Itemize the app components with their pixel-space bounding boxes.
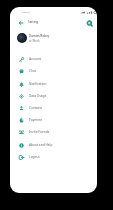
staticText: Data Usage bbox=[29, 94, 47, 98]
staticText: Notification bbox=[29, 82, 47, 86]
button[interactable]: Logout bbox=[10, 151, 97, 163]
button[interactable]: Contacts bbox=[10, 102, 97, 114]
button[interactable]: Account bbox=[10, 53, 97, 65]
button[interactable]: Search bbox=[83, 16, 96, 30]
staticText: Account bbox=[29, 57, 42, 61]
staticText: Contacts bbox=[29, 106, 43, 110]
staticText: Payment bbox=[29, 118, 43, 122]
staticText: Chat bbox=[29, 69, 36, 73]
staticText: About and Help bbox=[29, 143, 53, 147]
staticText: 3:05 PM bbox=[22, 11, 30, 14]
button[interactable]: Damon/Robey bbox=[10, 29, 97, 47]
staticText: at Work bbox=[29, 39, 40, 43]
button[interactable]: Notification bbox=[10, 78, 97, 90]
button[interactable]: Chat bbox=[10, 65, 97, 77]
button[interactable]: Payment bbox=[10, 114, 97, 126]
staticText: Invite Friends bbox=[29, 130, 50, 134]
staticText: Setting bbox=[28, 20, 39, 24]
button[interactable]: About and Help bbox=[10, 139, 97, 151]
button[interactable]: Back bbox=[14, 16, 27, 30]
button[interactable]: Data Usage bbox=[10, 90, 97, 102]
button[interactable]: Invite Friends bbox=[10, 126, 97, 138]
staticText: Damon/Robey bbox=[29, 34, 50, 38]
staticText: Logout bbox=[29, 155, 40, 159]
